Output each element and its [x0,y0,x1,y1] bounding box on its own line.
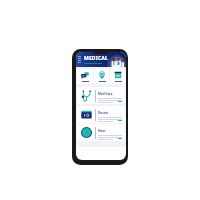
staticText: appointment app [84,62,103,65]
staticText: Hour [98,129,106,133]
staticText: MEDICAL [84,55,108,62]
button[interactable]: Menu [77,55,82,64]
button[interactable]: Med Care [77,87,125,104]
button[interactable]: Medicine [110,69,125,84]
staticText: Doctor [98,111,109,115]
button[interactable]: Doctor [77,106,125,123]
staticText: Med Care [98,92,113,96]
button[interactable]: Hour [77,124,125,141]
button[interactable]: Clinics [94,69,109,84]
button[interactable]: Messages [77,69,93,84]
